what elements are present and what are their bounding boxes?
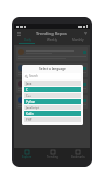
staticText: Search bbox=[29, 74, 38, 78]
staticText: Java bbox=[26, 82, 32, 86]
button[interactable]: Daily bbox=[14, 38, 40, 45]
button[interactable]: PHP bbox=[24, 117, 81, 122]
button[interactable]: C bbox=[24, 87, 81, 92]
staticText: Kotlin bbox=[26, 112, 34, 116]
button[interactable]: Weekly bbox=[40, 38, 65, 45]
button[interactable] bbox=[16, 63, 88, 77]
button[interactable]: Bookmarks bbox=[65, 148, 90, 160]
button[interactable] bbox=[16, 95, 88, 109]
button[interactable]: Filter bbox=[83, 31, 88, 36]
staticText: Weekly bbox=[47, 38, 58, 42]
staticText: JavaScript bbox=[26, 106, 39, 110]
staticText: Python bbox=[26, 100, 36, 104]
button[interactable]: Menu bbox=[16, 31, 21, 36]
staticText: Daily bbox=[24, 38, 31, 42]
staticText: C++ bbox=[26, 94, 31, 98]
button[interactable]: Java bbox=[24, 81, 81, 86]
staticText: Explore bbox=[22, 155, 32, 159]
staticText: C bbox=[26, 88, 28, 92]
staticText: Trending Repos bbox=[36, 31, 67, 36]
button[interactable]: Monthly bbox=[65, 38, 90, 45]
button[interactable] bbox=[16, 79, 88, 93]
staticText: Trending bbox=[47, 155, 58, 159]
button[interactable]: Search bbox=[24, 73, 81, 79]
staticText: Select a language bbox=[24, 67, 81, 71]
button[interactable]: Kotlin bbox=[24, 111, 81, 116]
button[interactable]: Explore bbox=[14, 148, 40, 160]
staticText: PHP bbox=[26, 118, 32, 122]
staticText: Monthly bbox=[72, 38, 84, 42]
button[interactable]: Python bbox=[24, 99, 81, 104]
staticText: Bookmarks bbox=[71, 155, 85, 159]
button[interactable] bbox=[16, 47, 88, 61]
button[interactable]: Trending bbox=[40, 148, 65, 160]
button[interactable]: JavaScript bbox=[24, 105, 81, 110]
button[interactable]: C++ bbox=[24, 93, 81, 98]
